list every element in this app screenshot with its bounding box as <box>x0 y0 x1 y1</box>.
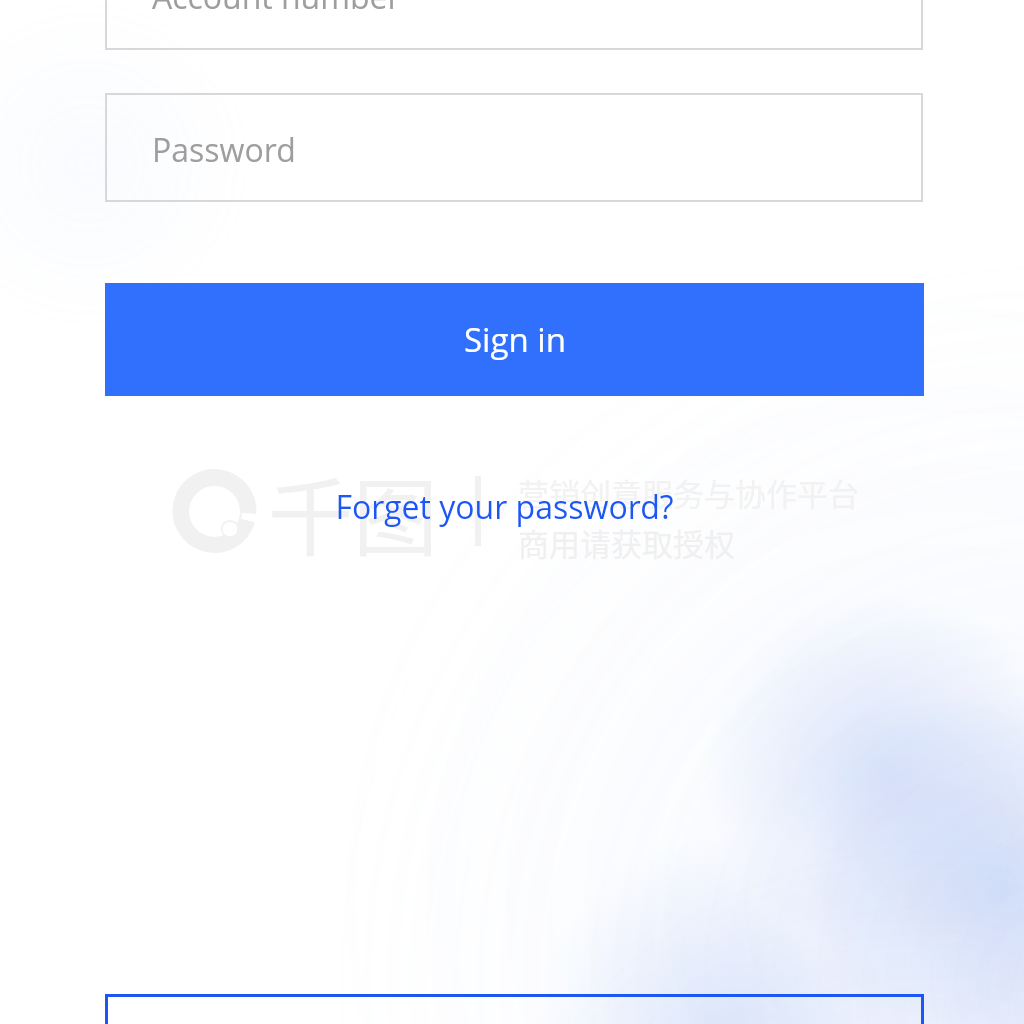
staticText: 千图 <box>268 450 439 573</box>
staticText: Forget your password? <box>335 485 674 529</box>
staticText: 商用请获取授权 <box>518 520 735 565</box>
button[interactable]: Account number <box>105 0 923 50</box>
staticText: Sign in <box>464 317 566 362</box>
staticText: Password <box>152 128 296 172</box>
staticText: 营销创意服务与协作平台 <box>518 470 859 515</box>
button[interactable]: Forget your password? <box>335 484 674 530</box>
button[interactable]: Password <box>105 93 923 202</box>
button[interactable]: Sign in <box>105 283 924 396</box>
staticText: Account number <box>152 0 401 19</box>
button[interactable]: Create an account <box>105 994 924 1024</box>
